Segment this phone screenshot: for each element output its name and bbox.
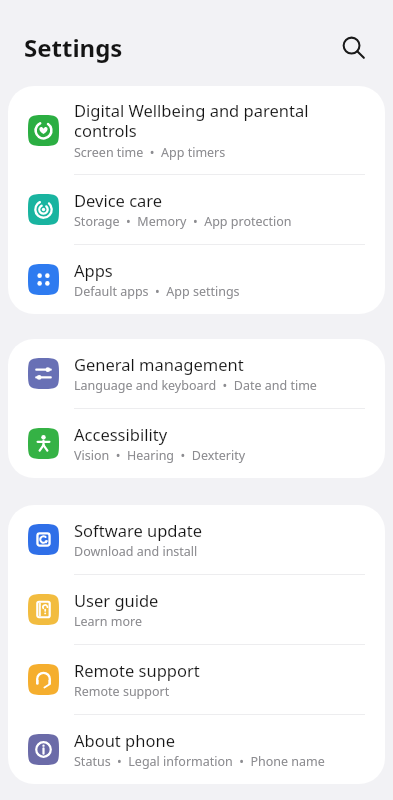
button[interactable]: Accessibility xyxy=(8,409,385,478)
button[interactable]: Remote support xyxy=(8,645,385,714)
button[interactable]: Apps xyxy=(8,245,385,314)
staticText: Software update xyxy=(74,519,202,541)
staticText: Remote support xyxy=(74,683,170,700)
staticText: General management xyxy=(74,353,244,375)
button[interactable]: User guide xyxy=(8,575,385,644)
staticText: User guide xyxy=(74,589,159,611)
staticText: Status • Legal information • Phone name xyxy=(74,753,325,770)
button[interactable]: General management xyxy=(8,339,385,408)
staticText: Storage • Memory • App protection xyxy=(74,213,292,230)
staticText: Vision • Hearing • Dexterity xyxy=(74,447,246,464)
staticText: Accessibility xyxy=(74,423,168,445)
staticText: Learn more xyxy=(74,613,142,630)
staticText: Digital Wellbeing and parental controls xyxy=(74,99,309,142)
staticText: Remote support xyxy=(74,659,200,681)
staticText: Default apps • App settings xyxy=(74,283,240,300)
button[interactable]: About phone xyxy=(8,715,385,784)
button[interactable]: Software update xyxy=(8,505,385,574)
staticText: Screen time • App timers xyxy=(74,144,226,161)
button[interactable]: Search xyxy=(331,25,375,69)
staticText: Download and install xyxy=(74,543,198,560)
staticText: About phone xyxy=(74,729,175,751)
staticText: Apps xyxy=(74,259,113,281)
staticText: Device care xyxy=(74,189,163,211)
button[interactable]: Device care xyxy=(8,175,385,244)
staticText: Language and keyboard • Date and time xyxy=(74,377,317,394)
staticText: Settings xyxy=(24,31,123,64)
button[interactable]: Digital Wellbeing and parental controls xyxy=(8,86,385,174)
